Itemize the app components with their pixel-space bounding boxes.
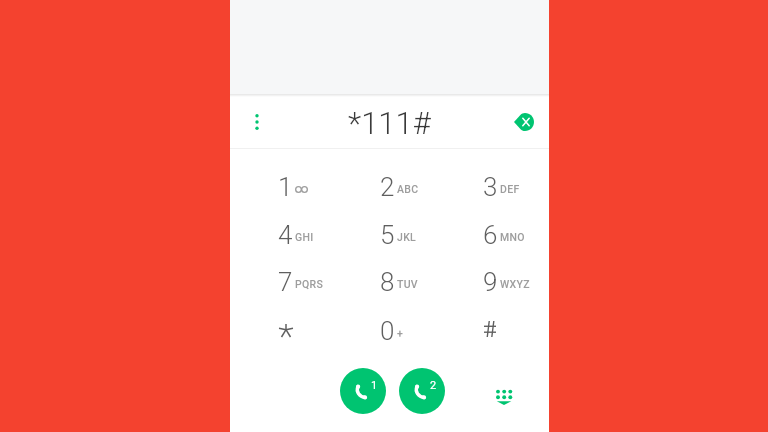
staticText: 2 xyxy=(430,379,437,392)
staticText: GHI xyxy=(295,231,314,243)
button[interactable]: Hide dialpad xyxy=(486,379,520,413)
button[interactable]: 5 xyxy=(336,211,438,259)
staticText: 6 xyxy=(483,220,498,250)
staticText: MNO xyxy=(500,231,525,243)
staticText: 0 xyxy=(380,316,395,346)
staticText: ABC xyxy=(397,183,419,195)
staticText: 2 xyxy=(380,172,395,202)
button[interactable]: Backspace xyxy=(507,105,541,139)
staticText: DEF xyxy=(500,183,520,195)
staticText: 1 xyxy=(278,172,293,202)
staticText: 1 xyxy=(371,379,378,392)
button[interactable]: Call using SIM 2 xyxy=(399,368,445,414)
staticText: WXYZ xyxy=(500,278,530,290)
button[interactable]: 2 xyxy=(336,163,438,211)
staticText: 7 xyxy=(278,267,293,297)
staticText: 9 xyxy=(483,267,498,297)
staticText: 5 xyxy=(380,220,395,250)
button[interactable]: 8 xyxy=(336,258,438,306)
button[interactable]: 4 xyxy=(234,211,336,259)
button[interactable] xyxy=(439,307,541,355)
staticText: *111# xyxy=(348,105,431,141)
staticText: PQRS xyxy=(295,278,324,290)
button[interactable]: More options xyxy=(240,105,274,139)
staticText: JKL xyxy=(397,231,417,243)
button[interactable] xyxy=(234,307,336,355)
button[interactable]: 3 xyxy=(439,163,541,211)
staticText: 8 xyxy=(380,267,395,297)
staticText: TUV xyxy=(397,278,418,290)
button[interactable]: 6 xyxy=(439,211,541,259)
button[interactable]: 7 xyxy=(234,258,336,306)
button[interactable]: 9 xyxy=(439,258,541,306)
staticText: 3 xyxy=(483,172,498,202)
button[interactable]: Call using SIM 1 xyxy=(340,368,386,414)
staticText: + xyxy=(397,327,404,339)
staticText: 4 xyxy=(278,220,293,250)
button[interactable]: 0 xyxy=(336,307,438,355)
button[interactable]: 1 xyxy=(234,163,336,211)
